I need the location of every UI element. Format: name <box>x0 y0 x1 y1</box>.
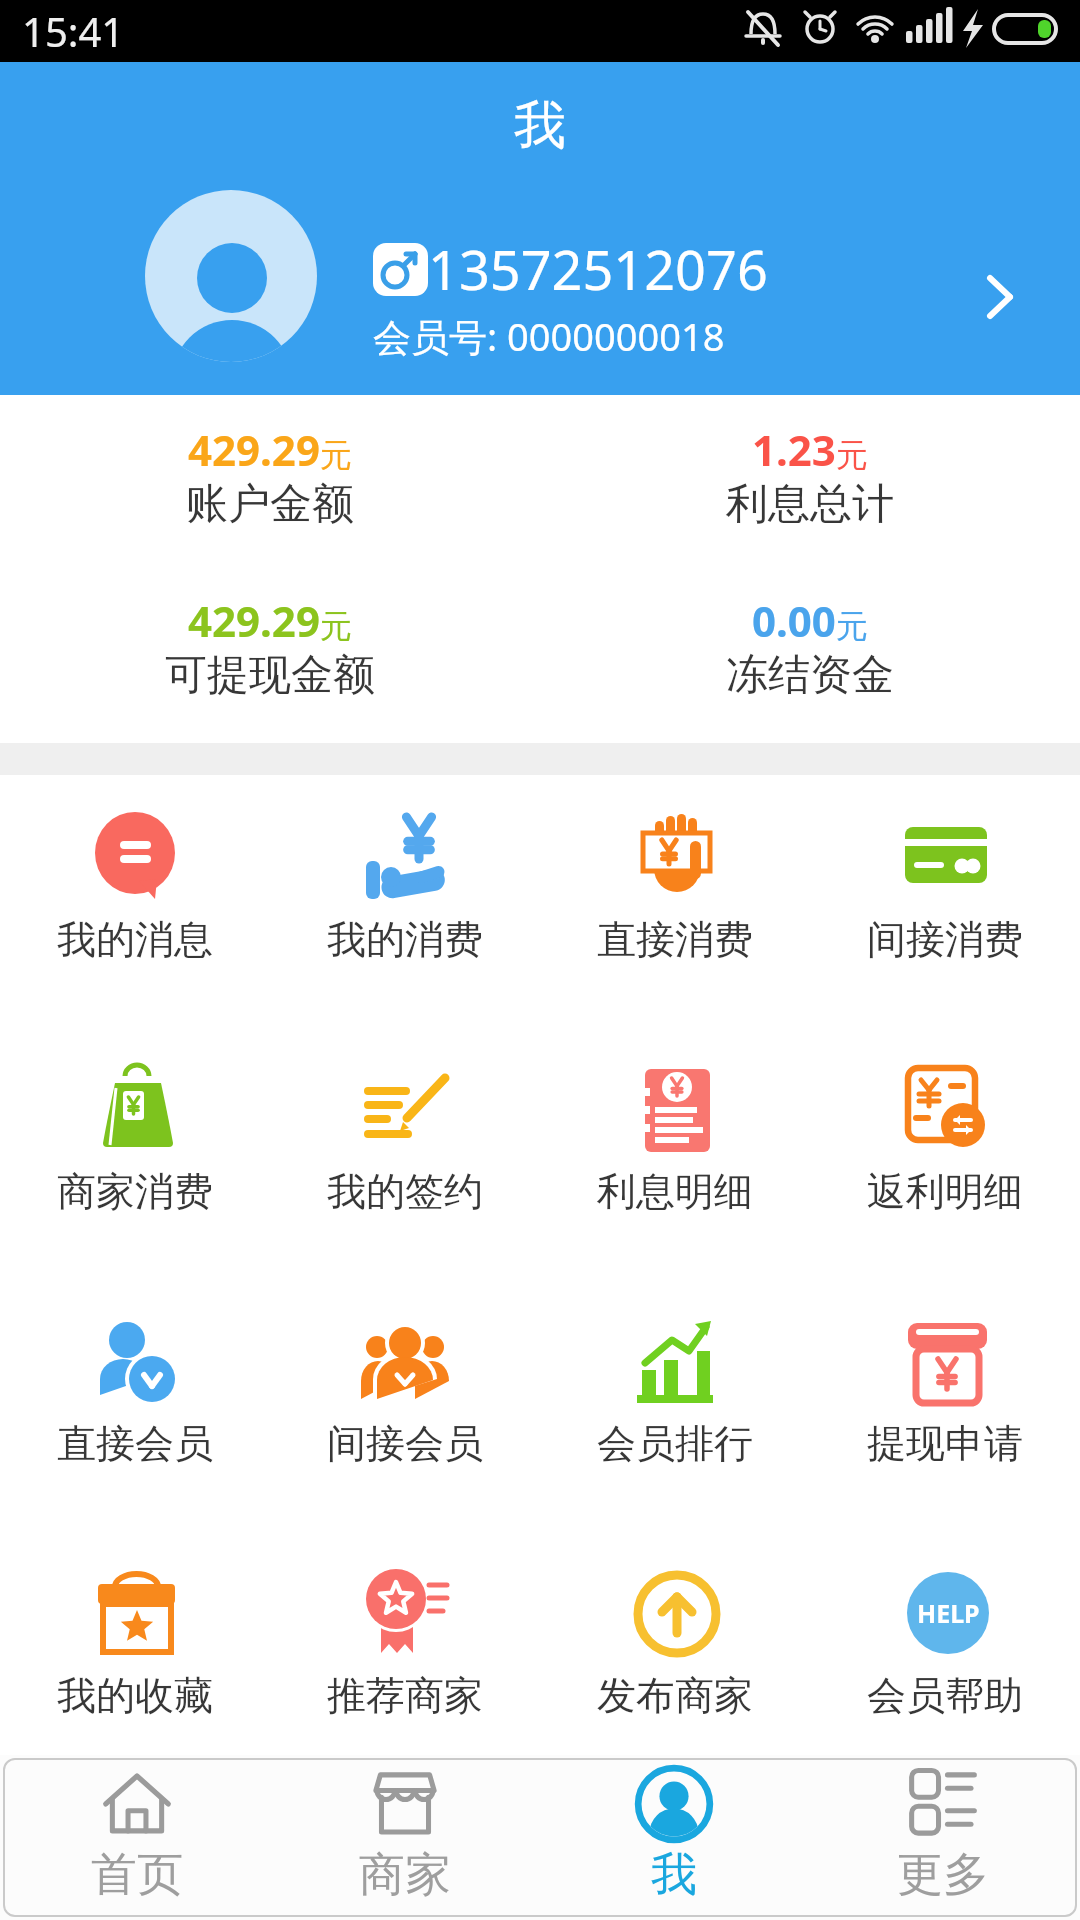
staticText: 元 <box>836 435 868 475</box>
button[interactable]: 会员排行 <box>540 1265 810 1510</box>
staticText: 会员帮助 <box>867 1671 1023 1720</box>
staticText: 我的签约 <box>327 1167 483 1216</box>
button[interactable]: 商家消费 <box>0 1020 270 1265</box>
staticText: 13572512076 <box>428 232 768 306</box>
staticText: 我的收藏 <box>57 1671 213 1720</box>
staticText: 间接会员 <box>327 1419 483 1468</box>
staticText: 发布商家 <box>597 1671 753 1720</box>
button[interactable]: 间接消费 <box>810 775 1080 1020</box>
button[interactable]: 间接会员 <box>270 1265 540 1510</box>
button[interactable]: 我的消费 <box>270 775 540 1020</box>
staticText: 元 <box>320 606 352 646</box>
staticText: 利息总计 <box>726 478 894 531</box>
button[interactable]: 直接消费 <box>540 775 810 1020</box>
staticText: 更多 <box>897 1846 989 1904</box>
staticText: 我的消费 <box>327 915 483 964</box>
staticText: 我 <box>651 1846 697 1904</box>
staticText: 冻结资金 <box>726 649 894 702</box>
staticText: 推荐商家 <box>327 1671 483 1720</box>
staticText: 会员号: 0000000018 <box>373 310 725 362</box>
button[interactable]: 推荐商家 <box>270 1510 540 1755</box>
button[interactable]: 我的签约 <box>270 1020 540 1265</box>
staticText: 商家 <box>359 1846 451 1904</box>
button[interactable]: 首页 <box>3 1758 271 1917</box>
button[interactable]: 利息明细 <box>540 1020 810 1265</box>
staticText: 429.29 <box>188 421 320 478</box>
button[interactable]: 更多 <box>808 1758 1077 1917</box>
staticText: 账户金额 <box>186 478 354 531</box>
staticText: 429.29 <box>188 592 320 649</box>
staticText: 提现申请 <box>867 1419 1023 1468</box>
staticText: 元 <box>320 435 352 475</box>
staticText: 会员排行 <box>597 1419 753 1468</box>
button[interactable]: HELP <box>810 1510 1080 1755</box>
staticText: 15:41 <box>22 4 125 58</box>
button[interactable]: 0.00 <box>540 592 1080 702</box>
button[interactable]: 我 <box>539 1758 808 1917</box>
staticText: 直接会员 <box>57 1419 213 1468</box>
staticText: 返利明细 <box>867 1167 1023 1216</box>
button[interactable]: 提现申请 <box>810 1265 1080 1510</box>
staticText: 可提现金额 <box>165 649 375 702</box>
staticText: 间接消费 <box>867 915 1023 964</box>
staticText: 0.00 <box>752 592 836 649</box>
button[interactable]: 1.23 <box>540 421 1080 531</box>
button[interactable]: 我的消息 <box>0 775 270 1020</box>
staticText: 商家消费 <box>57 1167 213 1216</box>
staticText: 首页 <box>91 1846 183 1904</box>
staticText: 我的消息 <box>57 915 213 964</box>
button[interactable]: 429.29 <box>0 421 540 531</box>
staticText: HELP <box>917 1596 980 1630</box>
staticText: 1.23 <box>752 421 836 478</box>
staticText: 利息明细 <box>597 1167 753 1216</box>
button[interactable]: 13572512076 <box>0 190 1080 362</box>
staticText: 我 <box>514 93 566 159</box>
button[interactable]: 429.29 <box>0 592 540 702</box>
button[interactable]: 我的收藏 <box>0 1510 270 1755</box>
button[interactable]: 返利明细 <box>810 1020 1080 1265</box>
button[interactable]: 直接会员 <box>0 1265 270 1510</box>
staticText: 元 <box>836 606 868 646</box>
button[interactable]: 发布商家 <box>540 1510 810 1755</box>
button[interactable]: 商家 <box>271 1758 539 1917</box>
staticText: 直接消费 <box>597 915 753 964</box>
